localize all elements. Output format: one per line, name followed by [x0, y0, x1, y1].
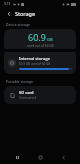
button[interactable]: Back: [57, 151, 69, 163]
staticText: 60.9: [28, 31, 46, 43]
button[interactable]: 60.9: [4, 29, 76, 49]
staticText: Portable storage: [6, 79, 34, 84]
staticText: Device storage: [6, 22, 30, 27]
staticText: 60.9 GB used of 64 GB: [19, 62, 51, 66]
staticText: GB: [47, 37, 53, 42]
button[interactable]: Back: [4, 9, 13, 18]
staticText: 9:13: [4, 2, 11, 6]
button[interactable]: Recent apps: [11, 151, 23, 163]
staticText: Storage: [15, 10, 36, 17]
button[interactable]: Home: [34, 151, 46, 163]
staticText: Unmounted: [19, 96, 36, 100]
staticText: Internal storage: [19, 56, 50, 61]
button[interactable]: SD card: [4, 86, 76, 104]
button[interactable]: Internal storage: [4, 52, 76, 74]
staticText: SD card: [19, 90, 34, 95]
staticText: used out of 64 GB: [27, 44, 54, 48]
